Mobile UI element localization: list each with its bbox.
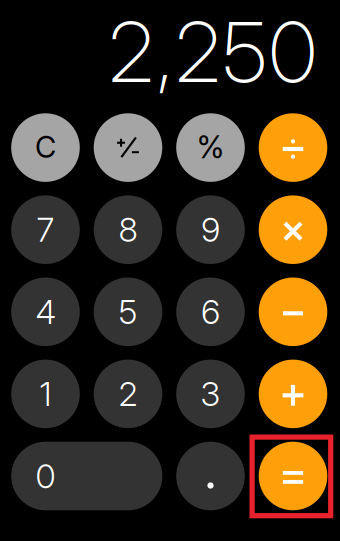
staticText: 9	[201, 209, 220, 250]
button[interactable]	[94, 113, 162, 182]
button[interactable]: 9	[176, 195, 245, 264]
button[interactable]	[259, 360, 327, 428]
button[interactable]	[259, 442, 327, 510]
button[interactable]: %	[176, 113, 245, 182]
button[interactable]: 1	[11, 360, 80, 428]
button[interactable]: 8	[94, 195, 162, 264]
button[interactable]	[259, 113, 327, 182]
staticText: %	[196, 129, 224, 166]
button[interactable]	[259, 195, 327, 264]
staticText: 4	[35, 292, 55, 332]
staticText: C	[35, 129, 56, 165]
button[interactable]: 5	[94, 277, 162, 346]
button[interactable]	[176, 442, 245, 510]
button[interactable]: 7	[11, 195, 80, 264]
button[interactable]	[259, 277, 327, 346]
staticText: 1	[39, 374, 51, 414]
staticText: 7	[36, 209, 54, 250]
button[interactable]: 4	[11, 277, 80, 346]
staticText: 2,250	[109, 2, 317, 102]
button[interactable]: 3	[176, 360, 245, 428]
staticText: 3	[200, 374, 220, 414]
button[interactable]: 2	[94, 360, 162, 428]
staticText: 5	[118, 292, 137, 332]
staticText: 6	[201, 292, 220, 332]
staticText: 0	[35, 456, 55, 496]
staticText: 8	[118, 209, 137, 250]
button[interactable]: 0	[11, 442, 162, 510]
button[interactable]: C	[11, 113, 80, 182]
button[interactable]: 6	[176, 277, 245, 346]
staticText: 2	[118, 374, 137, 414]
